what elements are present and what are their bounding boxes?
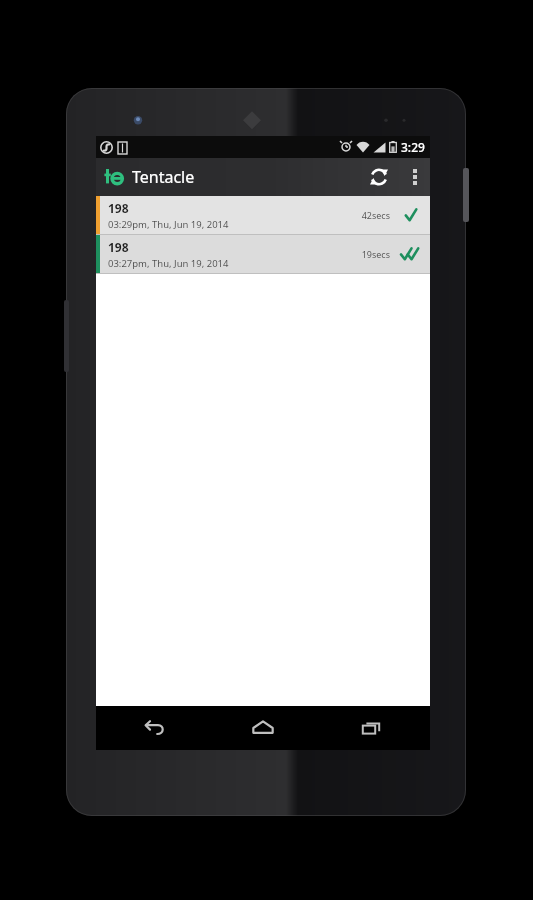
staticText: 198	[108, 200, 129, 216]
staticText: 03:27pm, Thu, Jun 19, 2014	[108, 257, 229, 270]
button[interactable]: Refresh	[358, 158, 400, 196]
staticText: 198	[108, 239, 129, 255]
button[interactable]: 198	[96, 235, 430, 273]
button[interactable]: 198	[96, 196, 430, 234]
button[interactable]: More options	[400, 158, 430, 196]
staticText: Tentacle	[132, 166, 195, 188]
button[interactable]: Home	[239, 706, 287, 750]
staticText: 3:29	[401, 139, 425, 155]
staticText: 42secs	[361, 209, 390, 221]
button[interactable]: Back	[130, 706, 178, 750]
button[interactable]: Recent apps	[348, 706, 396, 750]
staticText: 19secs	[361, 248, 390, 260]
staticText: 03:29pm, Thu, Jun 19, 2014	[108, 218, 229, 231]
